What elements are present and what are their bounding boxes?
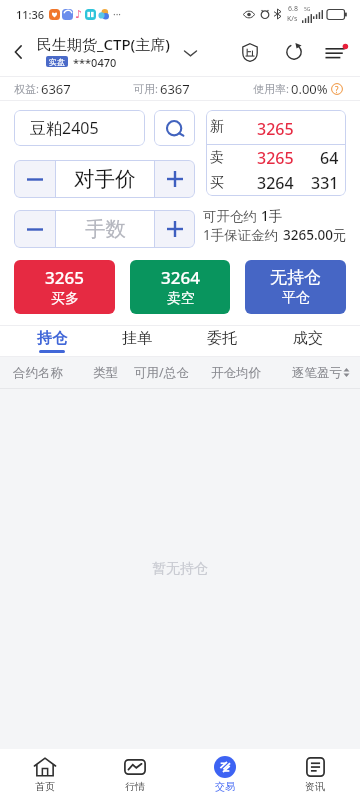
button[interactable]: 3264 bbox=[130, 260, 230, 314]
staticText: 权益: bbox=[14, 81, 39, 96]
staticText: 新 bbox=[210, 118, 224, 136]
button[interactable]: 3265 bbox=[14, 260, 115, 314]
button[interactable]: 减 bbox=[14, 160, 55, 198]
staticText: 行情 bbox=[125, 780, 145, 793]
staticText: 卖空 bbox=[167, 290, 195, 308]
button[interactable]: 挂单 bbox=[94, 326, 179, 356]
staticText: 使用率: bbox=[253, 81, 289, 96]
staticText: 合约名称 bbox=[13, 365, 63, 381]
button[interactable]: 刷新 bbox=[272, 28, 315, 76]
staticText: 3265 bbox=[257, 147, 294, 169]
button[interactable]: 首页 bbox=[0, 749, 90, 800]
staticText: 1手保证金约 bbox=[203, 226, 279, 244]
button[interactable]: 切换账户 bbox=[178, 28, 202, 76]
staticText: 64 bbox=[320, 147, 339, 169]
staticText: 开仓均价 bbox=[211, 365, 261, 381]
staticText: 暂无持仓 bbox=[152, 560, 208, 578]
staticText: 逐笔盈亏 bbox=[292, 365, 342, 381]
button[interactable]: 成交 bbox=[265, 326, 351, 356]
button[interactable]: 委托 bbox=[179, 326, 265, 356]
staticText: 3265 bbox=[257, 118, 294, 140]
staticText: 卖 bbox=[210, 149, 224, 167]
staticText: 豆粕2405 bbox=[30, 117, 99, 139]
staticText: 手数 bbox=[85, 216, 126, 242]
button[interactable]: 菜单 bbox=[315, 28, 358, 76]
staticText: 挂单 bbox=[122, 329, 152, 348]
staticText: 成交 bbox=[293, 329, 323, 348]
button[interactable]: 对手价 bbox=[56, 160, 154, 198]
staticText: 5G bbox=[304, 6, 311, 13]
staticText: 类型 bbox=[93, 365, 118, 381]
staticText: K/s bbox=[287, 14, 298, 24]
button[interactable]: 帮助 bbox=[331, 83, 343, 95]
button[interactable]: 加 bbox=[155, 210, 195, 248]
button[interactable]: 搜索 bbox=[154, 110, 195, 146]
staticText: 3265 bbox=[45, 266, 84, 289]
button[interactable]: 交易 bbox=[180, 749, 270, 800]
staticText: 11:36 bbox=[16, 7, 45, 22]
staticText: 0.00% bbox=[291, 80, 328, 98]
button[interactable]: 返回 bbox=[0, 28, 37, 76]
staticText: 买多 bbox=[51, 290, 79, 308]
staticText: 3265.00元 bbox=[283, 226, 347, 244]
staticText: 6.8 bbox=[288, 4, 298, 14]
staticText: ***0470 bbox=[73, 55, 117, 70]
button[interactable]: 减 bbox=[14, 210, 55, 248]
staticText: 首页 bbox=[35, 780, 55, 793]
staticText: 无持仓 bbox=[270, 267, 321, 288]
staticText: 买 bbox=[210, 174, 224, 192]
staticText: 交易 bbox=[215, 780, 235, 793]
staticText: 对手价 bbox=[74, 166, 136, 192]
staticText: 6367 bbox=[41, 80, 71, 98]
button[interactable]: 风控 bbox=[228, 28, 272, 76]
staticText: ? bbox=[335, 84, 339, 95]
staticText: 持仓 bbox=[37, 329, 67, 348]
staticText: 可用: bbox=[133, 81, 158, 96]
staticText: 资讯 bbox=[305, 780, 325, 793]
button[interactable]: 持仓 bbox=[9, 326, 94, 356]
staticText: ··· bbox=[113, 7, 122, 21]
button[interactable]: 无持仓 bbox=[245, 260, 346, 314]
button[interactable]: 手数 bbox=[56, 210, 154, 248]
staticText: 1手 bbox=[261, 207, 283, 225]
staticText: ♪ bbox=[75, 8, 83, 21]
staticText: 331 bbox=[311, 172, 339, 194]
staticText: 平仓 bbox=[282, 289, 310, 307]
button[interactable]: 加 bbox=[155, 160, 195, 198]
staticText: 可用/总仓 bbox=[134, 364, 189, 381]
button[interactable]: 资讯 bbox=[270, 749, 360, 800]
staticText: 3264 bbox=[257, 172, 294, 194]
staticText: 民生期货_CTP(主席) bbox=[37, 34, 170, 54]
staticText: 委托 bbox=[207, 329, 237, 348]
staticText: 6367 bbox=[160, 80, 190, 98]
staticText: 3264 bbox=[161, 266, 200, 289]
button[interactable]: 豆粕2405 bbox=[14, 110, 145, 146]
staticText: 实盘 bbox=[49, 57, 65, 67]
staticText: 可开仓约 bbox=[203, 208, 257, 225]
button[interactable]: 行情 bbox=[90, 749, 180, 800]
